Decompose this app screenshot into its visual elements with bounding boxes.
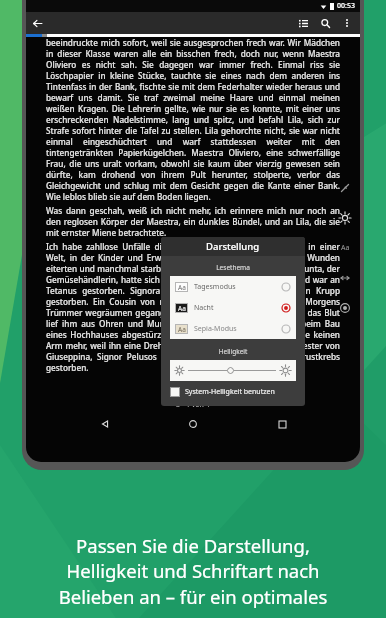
button[interactable]: Home: [183, 414, 203, 434]
button[interactable]: Font size: [337, 240, 353, 256]
button[interactable]: Search: [314, 12, 336, 34]
button[interactable]: Aa: [170, 297, 296, 318]
button[interactable]: Back: [26, 12, 48, 34]
staticText: Sepia-Modus: [194, 324, 237, 334]
staticText: 00:53: [337, 1, 355, 11]
button[interactable]: Margins: [337, 270, 353, 286]
staticText: Helligkeit: [161, 347, 305, 356]
staticText: Aa: [178, 325, 186, 334]
staticText: 3 - 1 von 4: [176, 400, 210, 410]
button[interactable]: Aa: [170, 276, 296, 297]
button[interactable]: More options: [336, 12, 358, 34]
staticText: beeindruckte mich sofort, weil sie ausge…: [46, 37, 340, 202]
button[interactable]: Theme: [337, 300, 353, 316]
staticText: Tagesmodus: [194, 282, 236, 292]
staticText: Was dann geschah, weiß ich nicht mehr, i…: [46, 205, 340, 238]
staticText: Passen Sie die Darstellung, Helligkeit u…: [0, 533, 386, 610]
staticText: Lesethema: [161, 263, 305, 272]
button[interactable]: Recent apps: [272, 414, 292, 434]
button[interactable]: Brightness: [337, 210, 353, 226]
staticText: Darstellung: [206, 240, 260, 253]
button[interactable]: Contents: [292, 12, 314, 34]
staticText: Aa: [178, 304, 186, 313]
staticText: Aa: [341, 243, 350, 253]
button[interactable]: Back: [95, 414, 115, 434]
button[interactable]: Aa: [170, 318, 296, 339]
button[interactable]: System-Helligkeit benutzen: [170, 387, 296, 397]
button[interactable]: Highlight: [337, 180, 353, 196]
button[interactable]: Brightness slider: [175, 360, 291, 381]
staticText: Nacht: [194, 303, 214, 313]
staticText: Ich habe zahllose Unfälle dieser Art in …: [46, 241, 340, 373]
staticText: Aa: [178, 283, 186, 292]
staticText: System-Helligkeit benutzen: [185, 387, 275, 397]
